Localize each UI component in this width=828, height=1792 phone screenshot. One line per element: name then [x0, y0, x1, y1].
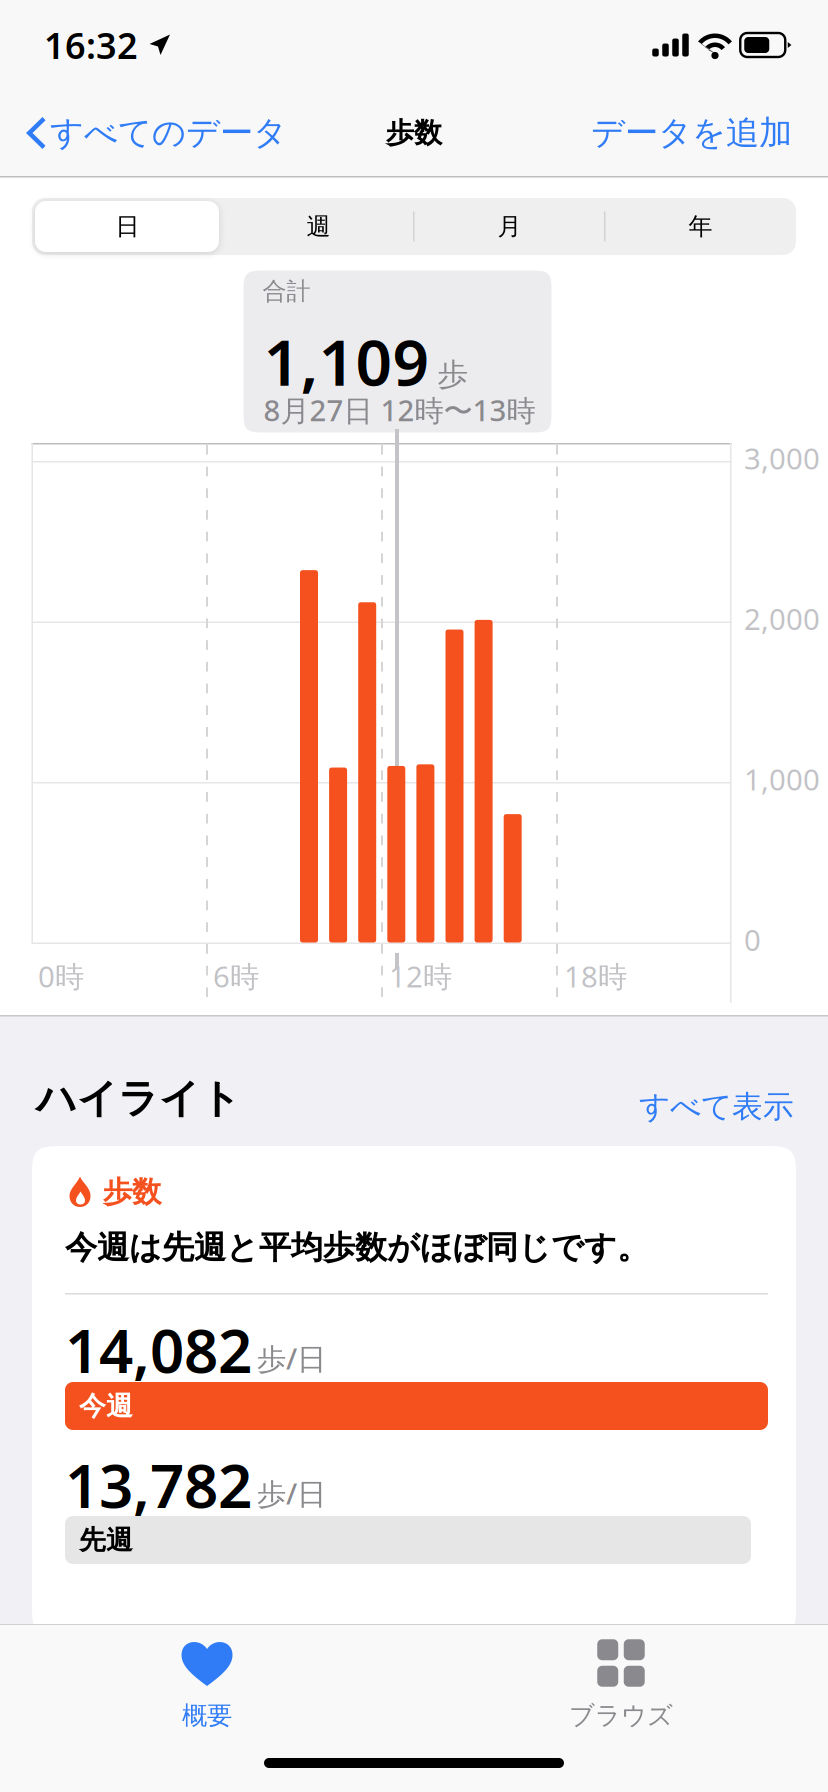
staticText: 歩/日 [257, 1339, 326, 1378]
button[interactable]: すべて表示 [631, 1082, 802, 1132]
staticText: 0時 [38, 956, 84, 995]
staticText: 13,782 [65, 1445, 252, 1525]
button[interactable]: 日 [32, 198, 223, 255]
staticText: 週 [306, 212, 330, 241]
button[interactable]: 月 [414, 198, 605, 255]
staticText: 2,000 [744, 599, 820, 638]
staticText: 今週 [79, 1390, 133, 1422]
staticText: 歩 [437, 356, 468, 393]
button[interactable]: ブラウズ [414, 1625, 828, 1740]
staticText: 14,082 [65, 1310, 252, 1390]
staticText: 今週は先週と平均歩数がほぼ同じです。 [65, 1228, 649, 1267]
staticText: 日 [115, 212, 139, 241]
staticText: 1,109 [263, 318, 429, 403]
staticText: 6時 [213, 956, 259, 995]
button[interactable]: データを追加 [579, 97, 804, 169]
staticText: 18時 [564, 956, 627, 995]
staticText: 月 [497, 212, 521, 241]
staticText: 16:32 [44, 21, 138, 69]
staticText: 先週 [79, 1524, 133, 1556]
staticText: 0 [744, 920, 761, 959]
button[interactable]: すべてのデータ [0, 97, 297, 169]
staticText: 12時 [389, 956, 452, 995]
button[interactable]: 概要 [0, 1625, 414, 1740]
button[interactable]: 週 [223, 198, 414, 255]
staticText: ブラウズ [569, 1700, 673, 1731]
staticText: 歩数 [103, 1174, 161, 1210]
staticText: データを追加 [591, 112, 792, 153]
staticText: ハイライト [36, 1074, 241, 1123]
staticText: 歩/日 [257, 1474, 326, 1513]
staticText: 1,000 [744, 759, 820, 798]
staticText: 8月27日 12時〜13時 [263, 390, 535, 429]
staticText: 合計 [262, 276, 310, 306]
staticText: 歩数 [386, 116, 442, 150]
staticText: 概要 [182, 1700, 232, 1731]
staticText: すべてのデータ [50, 112, 287, 153]
button[interactable]: 年 [605, 198, 796, 255]
staticText: すべて表示 [639, 1088, 794, 1126]
staticText: 年 [688, 212, 712, 241]
staticText: 3,000 [744, 438, 820, 477]
